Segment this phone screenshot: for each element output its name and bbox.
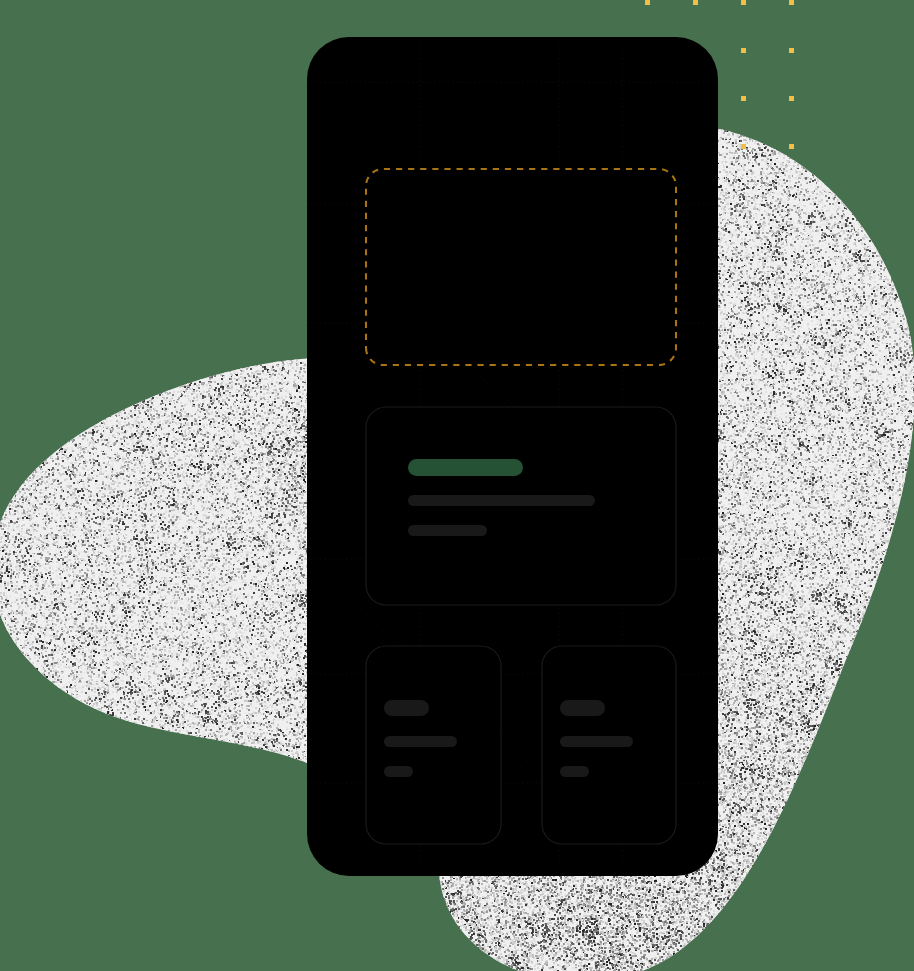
button[interactable]: Upload artwork placeholder — [366, 169, 676, 365]
button[interactable]: List item card one — [366, 646, 501, 844]
button[interactable]: List item card two — [542, 646, 676, 844]
button[interactable]: Featured item card — [366, 407, 676, 605]
